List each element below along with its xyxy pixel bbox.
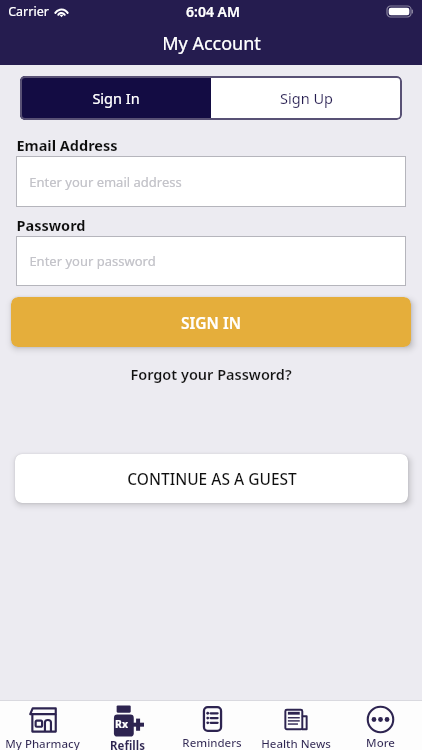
staticText: My Pharmacy (5, 736, 80, 750)
staticText: SIGN IN (181, 312, 241, 333)
button[interactable]: Sign In (20, 76, 211, 120)
button[interactable]: Reminders (170, 701, 254, 750)
button[interactable]: Refills (85, 701, 170, 750)
staticText: Refills (110, 738, 145, 750)
other: Refills (112, 705, 144, 737)
staticText: Sign In (92, 88, 140, 108)
staticText: My Account (162, 31, 261, 56)
button[interactable]: Enter your email address (16, 156, 406, 207)
staticText: Reminders (182, 735, 242, 750)
staticText: Health News (261, 736, 331, 750)
staticText: Rx (115, 717, 128, 731)
button[interactable]: Enter your password (16, 236, 406, 286)
other: My Pharmacy (28, 705, 58, 735)
other: Health News (281, 705, 311, 735)
staticText: Sign Up (280, 88, 333, 108)
button[interactable]: Forgot your Password? (124, 362, 298, 386)
staticText: Carrier (8, 3, 49, 20)
button[interactable]: Sign Up (211, 76, 402, 120)
staticText: CONTINUE AS A GUEST (127, 468, 297, 489)
staticText: 6:04 AM (186, 2, 240, 21)
button[interactable]: CONTINUE AS A GUEST (15, 454, 408, 503)
staticText: More (366, 735, 395, 750)
button[interactable]: More (338, 701, 422, 750)
other: Reminders (198, 705, 227, 734)
staticText: Enter your email address (29, 173, 182, 191)
staticText: Enter your password (29, 252, 156, 270)
button[interactable]: Health News (254, 701, 338, 750)
other: More (366, 705, 395, 734)
staticText: Email Address (16, 135, 118, 155)
button[interactable]: My Pharmacy (0, 701, 85, 750)
button[interactable]: SIGN IN (11, 297, 411, 347)
staticText: Password (16, 215, 86, 235)
staticText: Forgot your Password? (130, 364, 292, 384)
